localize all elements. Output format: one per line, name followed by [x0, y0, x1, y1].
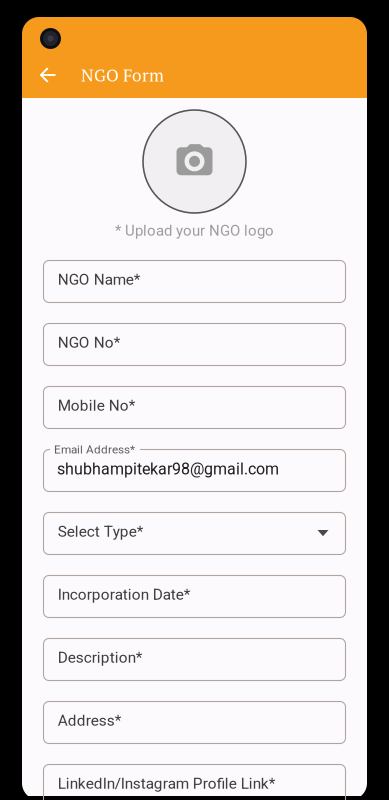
button[interactable]: NGO No* [43, 323, 345, 365]
staticText: NGO No* [58, 333, 121, 351]
staticText: * Upload your NGO logo [115, 222, 274, 239]
staticText: LinkedIn/Instagram Profile Link* [58, 774, 276, 792]
button[interactable]: Select Type* [43, 512, 345, 554]
button[interactable]: Upload NGO logo [143, 110, 246, 213]
button[interactable]: Incorporation Date* [43, 575, 345, 617]
staticText: Email Address* [54, 442, 135, 456]
staticText: Description* [58, 648, 143, 666]
staticText: Incorporation Date* [58, 585, 191, 603]
staticText: NGO Name* [58, 270, 141, 288]
button[interactable]: Mobile No* [43, 386, 345, 428]
button[interactable]: LinkedIn/Instagram Profile Link* [43, 764, 345, 800]
staticText: Address* [58, 711, 122, 729]
button[interactable]: Address* [43, 701, 345, 743]
staticText: shubhampitekar98@gmail.com [57, 460, 279, 478]
staticText: NGO Form [81, 64, 164, 86]
staticText: Mobile No* [58, 396, 136, 414]
button[interactable]: Description* [43, 638, 345, 680]
button[interactable]: Back [22, 57, 74, 93]
staticText: Select Type* [58, 522, 144, 540]
button[interactable]: shubhampitekar98@gmail.com [43, 449, 345, 491]
button[interactable]: NGO Name* [43, 260, 345, 302]
